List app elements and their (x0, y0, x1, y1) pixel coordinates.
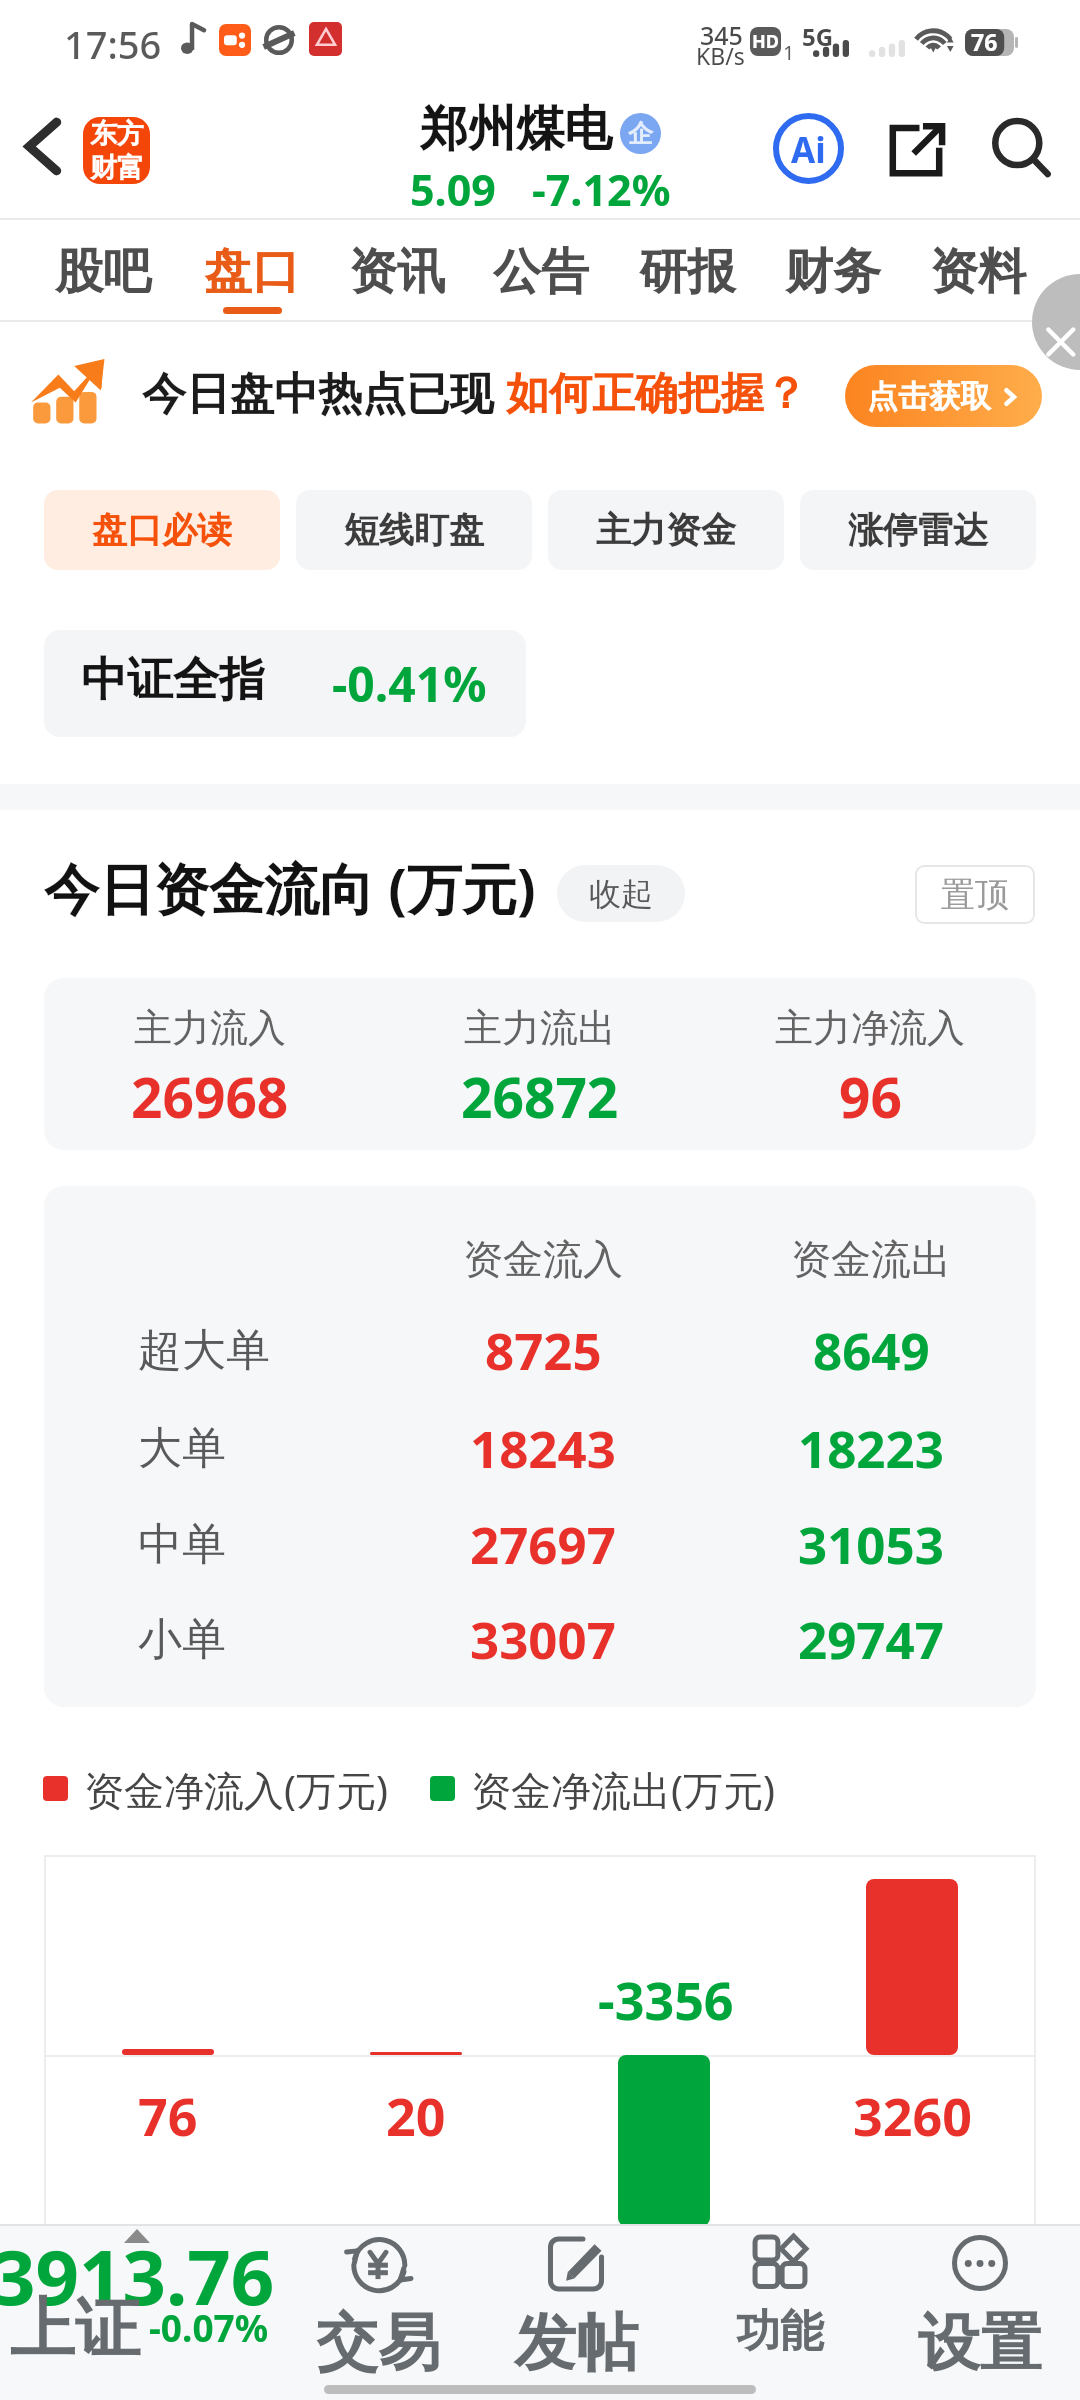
staticText: 8725 (485, 1315, 602, 1384)
staticText: -3356 (598, 1964, 734, 2035)
button[interactable]: East Money (83, 117, 150, 184)
button[interactable]: 短线盯盘 (296, 490, 532, 570)
button[interactable]: 3913.76 (0, 2226, 1080, 2400)
staticText: 今日资金流向 (万元) (44, 850, 536, 925)
staticText: 345 (700, 18, 743, 52)
staticText: 股吧 (55, 242, 151, 302)
button[interactable]: 功能 (680, 2226, 880, 2400)
button[interactable]: 置顶 (915, 865, 1035, 924)
staticText: 大单 (138, 1421, 226, 1476)
staticText: 8649 (813, 1315, 930, 1384)
button[interactable]: 设置 (880, 2226, 1080, 2400)
button[interactable]: 研报 (615, 218, 759, 322)
staticText: 交易 (316, 2304, 440, 2382)
staticText: -7.12% (532, 160, 671, 219)
staticText: 上证 (10, 2288, 140, 2370)
staticText: 中证全指 (81, 651, 265, 709)
staticText: 涨停雷达 (848, 508, 988, 552)
staticText: 17:56 (64, 18, 162, 70)
staticText: 96 (839, 1059, 902, 1134)
staticText: 18223 (798, 1413, 944, 1482)
staticText: 盘口 (204, 242, 300, 302)
staticText: 主力流入 (134, 1004, 286, 1052)
staticText: 27697 (470, 1509, 616, 1578)
staticText: 资讯 (349, 242, 445, 302)
staticText: 发帖 (514, 2304, 638, 2382)
button[interactable]: 资讯 (325, 218, 469, 322)
button[interactable]: 发帖 (476, 2226, 676, 2400)
staticText: 中单 (138, 1517, 226, 1572)
staticText: 29747 (798, 1604, 944, 1673)
staticText: 31053 (798, 1509, 944, 1578)
staticText: 5.09 (410, 160, 496, 219)
staticText: 郑州煤电 (420, 99, 612, 159)
button[interactable]: 收起 (557, 865, 685, 922)
staticText: 小单 (138, 1612, 226, 1667)
staticText: HD (752, 29, 779, 54)
staticText: 公告 (493, 242, 589, 302)
staticText: 置顶 (941, 873, 1009, 916)
staticText: 今日盘中热点已现 (142, 367, 494, 422)
staticText: 3913.76 (0, 2224, 275, 2328)
staticText: 26872 (461, 1059, 619, 1134)
staticText: 资料 (930, 242, 1026, 302)
staticText: 33007 (470, 1604, 616, 1673)
staticText: 短线盯盘 (344, 508, 484, 552)
button[interactable]: 点击获取 (845, 365, 1042, 427)
button[interactable]: 交易 (278, 2226, 478, 2400)
staticText: 26968 (131, 1059, 289, 1134)
staticText: 盘口必读 (92, 508, 232, 552)
staticText: 76 (971, 26, 998, 57)
button[interactable]: 涨停雷达 (800, 490, 1036, 570)
staticText: 收起 (589, 874, 653, 914)
staticText: 主力流出 (464, 1004, 616, 1052)
staticText: 5G (802, 20, 834, 53)
staticText: 18243 (470, 1413, 616, 1482)
staticText: 资金流出 (791, 1234, 951, 1284)
staticText: 3260 (853, 2080, 972, 2151)
button[interactable]: Share (884, 118, 948, 182)
button[interactable]: 财务 (761, 218, 905, 322)
button[interactable]: 盘口必读 (44, 490, 280, 570)
staticText: 研报 (639, 242, 735, 302)
staticText: 1 (783, 39, 795, 66)
staticText: -0.07% (149, 2302, 269, 2352)
staticText: 财富 (90, 151, 144, 184)
staticText: 资金净流出(万元) (471, 1762, 775, 1817)
button[interactable]: AI assistant (771, 111, 846, 186)
staticText: KB/s (696, 40, 745, 71)
staticText: 资金净流入(万元) (84, 1762, 388, 1817)
staticText: Ai (791, 126, 826, 174)
staticText: 设置 (918, 2304, 1042, 2382)
staticText: 功能 (736, 2304, 824, 2359)
staticText: 东方 (90, 117, 144, 151)
staticText: 76 (138, 2080, 198, 2151)
button[interactable]: Back (4, 108, 80, 184)
staticText: 资金流入 (463, 1234, 623, 1284)
button[interactable]: 股吧 (31, 218, 175, 322)
staticText: 主力资金 (596, 508, 736, 552)
button[interactable]: Close banner (1032, 322, 1080, 372)
staticText: 企 (628, 118, 653, 149)
staticText: 20 (386, 2080, 446, 2151)
staticText: 财务 (785, 242, 881, 302)
button[interactable]: 盘口 (180, 218, 324, 322)
staticText: -0.41% (332, 651, 487, 716)
staticText: 主力净流入 (775, 1004, 965, 1052)
button[interactable]: 主力资金 (548, 490, 784, 570)
button[interactable]: 公告 (469, 218, 613, 322)
staticText: 超大单 (138, 1323, 270, 1378)
button[interactable]: Search (988, 115, 1054, 181)
staticText: 如何正确把握？ (506, 367, 807, 421)
staticText: 点击获取 (867, 377, 991, 416)
button[interactable]: 资料 (906, 218, 1050, 322)
button[interactable]: 中证全指 (44, 630, 526, 737)
